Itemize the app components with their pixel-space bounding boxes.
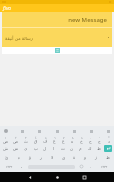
staticText: ٢	[15, 136, 17, 139]
button[interactable]: new Message	[2, 12, 112, 27]
button[interactable]: Tool 3	[72, 128, 77, 134]
staticText: ء	[18, 155, 20, 160]
staticText: ٩	[81, 136, 83, 139]
staticText: ب	[34, 146, 38, 151]
staticText: ض	[3, 139, 9, 144]
staticText: ٤	[35, 136, 37, 139]
staticText: ن	[70, 146, 74, 151]
staticText: لا	[51, 155, 54, 160]
staticText: ؤ	[29, 155, 32, 160]
staticText: new Message	[68, 16, 107, 24]
button[interactable]: ن	[67, 144, 76, 153]
button[interactable]: ٦	[50, 135, 59, 144]
staticText: ئ	[5, 155, 9, 160]
button[interactable]: Tool 0	[20, 128, 25, 134]
button[interactable]: ظ	[102, 153, 113, 162]
staticText: ؟١٢٣	[101, 165, 108, 168]
staticText: ا	[53, 146, 55, 151]
staticText: د	[108, 139, 110, 144]
button[interactable]: ط	[94, 144, 103, 153]
staticText: ط	[97, 146, 101, 151]
staticText: ة	[73, 155, 76, 160]
staticText: fivo	[3, 5, 12, 12]
button[interactable]: ا	[49, 144, 58, 153]
staticText: ف	[43, 139, 48, 144]
staticText: رسالة من أنيقة	[5, 35, 33, 41]
staticText: ل	[43, 146, 47, 151]
staticText: ١	[5, 136, 7, 139]
staticText: و	[84, 155, 87, 160]
button[interactable]: رسالة من أنيقة	[2, 28, 112, 47]
staticText: ص	[13, 139, 19, 144]
staticText: =	[108, 135, 110, 139]
button[interactable]: ٠	[86, 135, 95, 144]
button[interactable]: Keyboard settings	[3, 128, 8, 133]
button[interactable]: Tool 2	[55, 128, 60, 134]
button[interactable]: ئ	[1, 153, 13, 162]
button[interactable]: -	[95, 135, 104, 144]
button[interactable]: ٩	[77, 135, 86, 144]
button[interactable]: ر	[36, 153, 47, 162]
button[interactable]: لا	[47, 153, 58, 162]
button[interactable]: Emoji	[76, 162, 86, 171]
button[interactable]: ٣	[21, 135, 31, 144]
button[interactable]: ٨	[68, 135, 77, 144]
staticText: ع	[62, 139, 65, 144]
staticText: غ	[53, 139, 56, 144]
button[interactable]: ؟١٢٣	[96, 162, 112, 171]
button[interactable]: ي	[21, 144, 31, 153]
button[interactable]: س	[11, 144, 21, 153]
staticText: ،	[21, 164, 23, 169]
button[interactable]: ٢	[11, 135, 21, 144]
staticText: ث	[24, 139, 28, 144]
button[interactable]: ل	[40, 144, 49, 153]
staticText: ٨	[72, 136, 74, 139]
staticText: م	[79, 146, 82, 151]
button[interactable]: ؟١٢٣	[2, 162, 17, 171]
button[interactable]: Home	[53, 173, 61, 181]
staticText: خ	[80, 139, 83, 144]
button[interactable]: ى	[58, 153, 69, 162]
staticText: ي	[24, 146, 28, 151]
staticText: ح	[89, 139, 92, 144]
staticText: ر	[40, 155, 43, 160]
staticText: ت	[61, 146, 65, 151]
staticText: س	[13, 146, 19, 151]
staticText: ق	[34, 139, 38, 144]
button[interactable]: ب	[31, 144, 40, 153]
staticText: ظ	[106, 155, 110, 160]
button[interactable]: ٤	[31, 135, 41, 144]
button[interactable]: ؤ	[25, 153, 36, 162]
button[interactable]: ش	[1, 144, 11, 153]
button[interactable]: ٥	[41, 135, 50, 144]
button[interactable]: ت	[58, 144, 67, 153]
button[interactable]: Tool 5	[106, 128, 111, 134]
staticText: -	[99, 135, 100, 139]
button[interactable]: Attach	[54, 47, 60, 54]
button[interactable]: =	[104, 135, 113, 144]
button[interactable]: Tool 4	[89, 128, 94, 134]
staticText: ؟١٢٣	[6, 165, 13, 168]
staticText: ٧	[63, 136, 65, 139]
button[interactable]: ء	[13, 153, 25, 162]
button[interactable]: ،	[17, 162, 27, 171]
button[interactable]: Enter	[104, 145, 112, 152]
button[interactable]: Recents	[80, 173, 88, 181]
button[interactable]: ك	[85, 144, 94, 153]
staticText: ى	[62, 155, 66, 160]
staticText: ك	[88, 146, 92, 151]
button[interactable]: fivo	[0, 4, 114, 12]
button[interactable]: Tool 1	[37, 128, 42, 134]
staticText: ٠	[90, 136, 92, 139]
staticText: ش	[3, 146, 9, 151]
button[interactable]: ١	[1, 135, 11, 144]
button[interactable]: ة	[69, 153, 80, 162]
button[interactable]: و	[80, 153, 91, 162]
button[interactable]: ز	[91, 153, 102, 162]
staticText: ٥	[45, 136, 47, 139]
button[interactable]: م	[76, 144, 85, 153]
button[interactable]: ٧	[59, 135, 68, 144]
button[interactable]: Back	[26, 173, 34, 181]
